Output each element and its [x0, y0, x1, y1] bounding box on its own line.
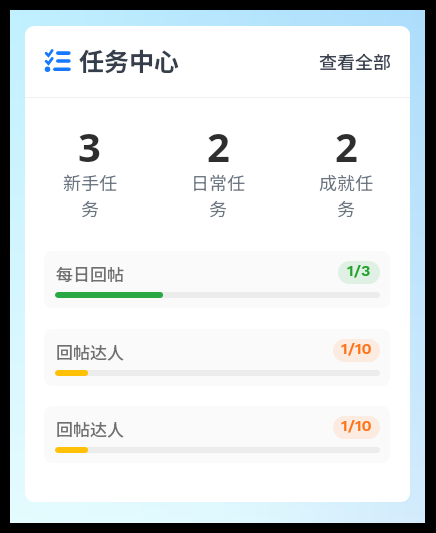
other: Task list — [45, 50, 71, 71]
button[interactable]: 回帖达人 — [44, 406, 390, 463]
staticText: 1/3 — [347, 261, 371, 280]
button[interactable]: 3 — [25, 98, 154, 251]
staticText: 2 — [335, 119, 358, 173]
staticText: 任务中心 — [79, 42, 180, 78]
staticText: 每日回帖 — [56, 261, 124, 286]
staticText: 回帖达人 — [56, 416, 124, 441]
button[interactable]: 每日回帖 — [44, 251, 390, 308]
button[interactable]: 查看全部 — [319, 49, 391, 75]
staticText: 回帖达人 — [56, 339, 124, 364]
staticText: 查看全部 — [319, 48, 391, 74]
staticText: 2 — [207, 119, 230, 173]
button[interactable]: 2 — [282, 98, 410, 251]
staticText: 1/10 — [341, 416, 372, 435]
button[interactable]: 回帖达人 — [44, 329, 390, 386]
staticText: 成就任务 — [315, 169, 377, 221]
staticText: 新手任务 — [59, 169, 121, 221]
button[interactable]: 2 — [154, 98, 282, 251]
staticText: 日常任务 — [187, 169, 249, 221]
staticText: 1/10 — [341, 339, 372, 358]
staticText: 3 — [78, 119, 101, 173]
